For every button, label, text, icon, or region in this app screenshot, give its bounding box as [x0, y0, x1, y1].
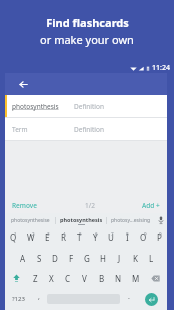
staticText: 0 [159, 231, 162, 237]
staticText: 7 [111, 231, 114, 237]
staticText: 1 [14, 231, 17, 237]
staticText: M [132, 273, 140, 284]
staticText: T [77, 232, 82, 243]
button[interactable]: G [79, 248, 95, 268]
staticText: B [99, 273, 105, 284]
staticText: G [84, 253, 90, 264]
button[interactable]: ?123 [5, 288, 32, 310]
staticText: ?123 [12, 295, 25, 303]
staticText: 2 [32, 231, 35, 237]
button[interactable]: C [59, 268, 76, 288]
staticText: Remove [12, 201, 37, 210]
button[interactable]: M [127, 268, 144, 288]
button[interactable]: U [103, 227, 119, 248]
button[interactable]: B [93, 268, 110, 288]
button[interactable]: Z [27, 268, 43, 288]
staticText: F [69, 253, 74, 264]
button[interactable]: H [95, 248, 111, 268]
staticText: U [108, 232, 114, 243]
staticText: J [118, 253, 121, 264]
button[interactable]: E [39, 227, 55, 248]
button[interactable]: V [76, 268, 93, 288]
staticText: 9 [144, 231, 147, 237]
staticText: Definition [74, 125, 104, 134]
staticText: , [38, 292, 40, 302]
button[interactable]: photosy…esising [107, 213, 154, 227]
button[interactable]: Shift [5, 268, 27, 288]
staticText: or make your own [40, 32, 134, 47]
staticText: H [100, 253, 106, 264]
staticText: photosy…esising [111, 217, 151, 224]
staticText: Definition [74, 102, 104, 111]
staticText: 8 [126, 231, 129, 237]
staticText: . [128, 292, 130, 302]
button[interactable]: Voice input [154, 213, 167, 227]
button[interactable]: X [43, 268, 59, 288]
button[interactable]: R [55, 227, 71, 248]
button[interactable]: . [121, 288, 136, 310]
staticText: 6 [95, 231, 98, 237]
staticText: E [45, 232, 50, 243]
button[interactable]: Q [5, 227, 22, 248]
staticText: photosynthesis [12, 102, 74, 111]
staticText: P [157, 232, 162, 243]
staticText: I [126, 232, 129, 243]
staticText: 3 [47, 231, 50, 237]
button[interactable]: W [22, 227, 39, 248]
button[interactable]: Back [15, 76, 31, 92]
staticText: N [115, 273, 122, 284]
button[interactable]: Remove [12, 201, 37, 210]
staticText: photosynthesis [60, 216, 103, 223]
button[interactable]: , [32, 288, 46, 310]
button[interactable]: Space [46, 288, 121, 310]
button[interactable]: photosynthesise [5, 213, 55, 227]
staticText: L [149, 253, 154, 264]
staticText: X [49, 273, 54, 284]
button[interactable]: T [71, 227, 87, 248]
staticText: Q [10, 232, 17, 243]
staticText: Find flashcards [46, 15, 129, 30]
staticText: S [37, 253, 42, 264]
staticText: Term [12, 125, 74, 134]
button[interactable]: I [119, 227, 135, 248]
button[interactable]: Term [5, 118, 167, 140]
button[interactable]: Enter [136, 288, 167, 310]
button[interactable]: J [111, 248, 127, 268]
staticText: Z [33, 273, 38, 284]
staticText: R [61, 232, 66, 243]
button[interactable]: S [31, 248, 47, 268]
staticText: A [20, 253, 26, 264]
button[interactable]: Y [87, 227, 103, 248]
button[interactable]: P [151, 227, 167, 248]
button[interactable]: D [47, 248, 63, 268]
button[interactable]: photosynthesis [5, 95, 167, 117]
staticText: V [82, 273, 87, 284]
button[interactable]: O [135, 227, 151, 248]
staticText: C [65, 273, 71, 284]
button[interactable]: N [110, 268, 127, 288]
staticText: K [133, 253, 138, 264]
staticText: O [140, 232, 147, 243]
button[interactable]: F [63, 248, 79, 268]
staticText: Y [93, 232, 98, 243]
button[interactable]: A [14, 248, 31, 268]
staticText: Add + [142, 201, 160, 210]
button[interactable]: Add + [142, 201, 160, 210]
staticText: W [27, 232, 35, 243]
staticText: 5 [79, 231, 82, 237]
button[interactable]: L [143, 248, 159, 268]
button[interactable]: K [127, 248, 143, 268]
staticText: 4 [63, 231, 66, 237]
staticText: 11:24 [152, 63, 170, 73]
staticText: D [52, 253, 58, 264]
button[interactable]: Backspace [144, 268, 167, 288]
staticText: 1/2 [85, 201, 95, 210]
staticText: photosynthesise [11, 217, 50, 224]
button[interactable]: photosynthesis [56, 213, 106, 227]
